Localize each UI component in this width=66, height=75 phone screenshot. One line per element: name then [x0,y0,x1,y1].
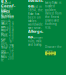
staticText: 1.1 [9,39,14,42]
button[interactable]: Salt [1,39,14,42]
staticText: Learn more [46,50,54,57]
staticText: Vit D [1,45,8,48]
staticText: Allergens [28,28,43,39]
staticText: 3.0 [9,33,14,36]
staticText: 1604 [8,16,14,23]
staticText: Nutrition [1,15,14,18]
staticText: Protein [1,34,8,41]
staticText: 2.8 [9,45,14,48]
button[interactable]: Niacin [1,51,14,54]
button[interactable]: Saturates [1,24,14,27]
button[interactable]: Iron [1,42,14,45]
staticText: 1.2 [9,48,14,51]
staticText: Niacin [1,51,9,54]
staticText: Fibre [1,33,8,36]
button[interactable]: Energy [1,18,14,21]
staticText: Energy [1,16,7,23]
staticText: Saturates [1,22,8,29]
staticText: May contain nuts, milk and barley. [28,36,43,46]
staticText: Iron [1,42,7,45]
staticText: Folate [1,55,7,62]
button[interactable]: Fat [1,21,14,24]
button[interactable]: Protein [1,36,14,39]
staticText: 200 [8,57,14,60]
staticText: 0.2 [9,24,14,27]
staticText: Thiamin [1,46,7,53]
staticText: Salt [1,39,5,42]
staticText: 0.9 g [6,21,14,24]
staticText: 1.4 [9,54,14,57]
staticText: 15 [10,51,14,54]
staticText: Kellogg's Cornflakes [1,0,15,14]
staticText: Sugars [1,28,8,35]
staticText: 8.0 [9,30,14,33]
staticText: Vit B6 [1,52,5,59]
button[interactable]: Vit B6 [1,54,14,57]
staticText: 84 g [7,27,14,30]
button[interactable]: Thiamin [1,48,14,51]
staticText: Carbs [1,25,6,32]
button[interactable]: Sugars [1,30,14,33]
staticText: Toasted golden corn [1,1,12,12]
button[interactable]: Fibre [1,33,14,36]
staticText: Per 100 g [1,7,13,14]
staticText: Discover the range [45,45,62,52]
button[interactable]: Folate [1,57,14,60]
staticText: Every flake is toasted golden, milled fr… [45,1,61,29]
staticText: Evolution [28,0,43,8]
staticText: 8 mg [10,40,14,47]
staticText: Toasted in 1894, the flake has been on t… [28,5,43,30]
staticText: Fat [1,21,4,24]
button[interactable]: Carbs [1,27,14,30]
staticText: 7.0 [9,36,14,39]
staticText: serving [1,12,11,15]
button[interactable]: Learn more [45,51,56,55]
button[interactable]: Vit D [1,45,14,48]
